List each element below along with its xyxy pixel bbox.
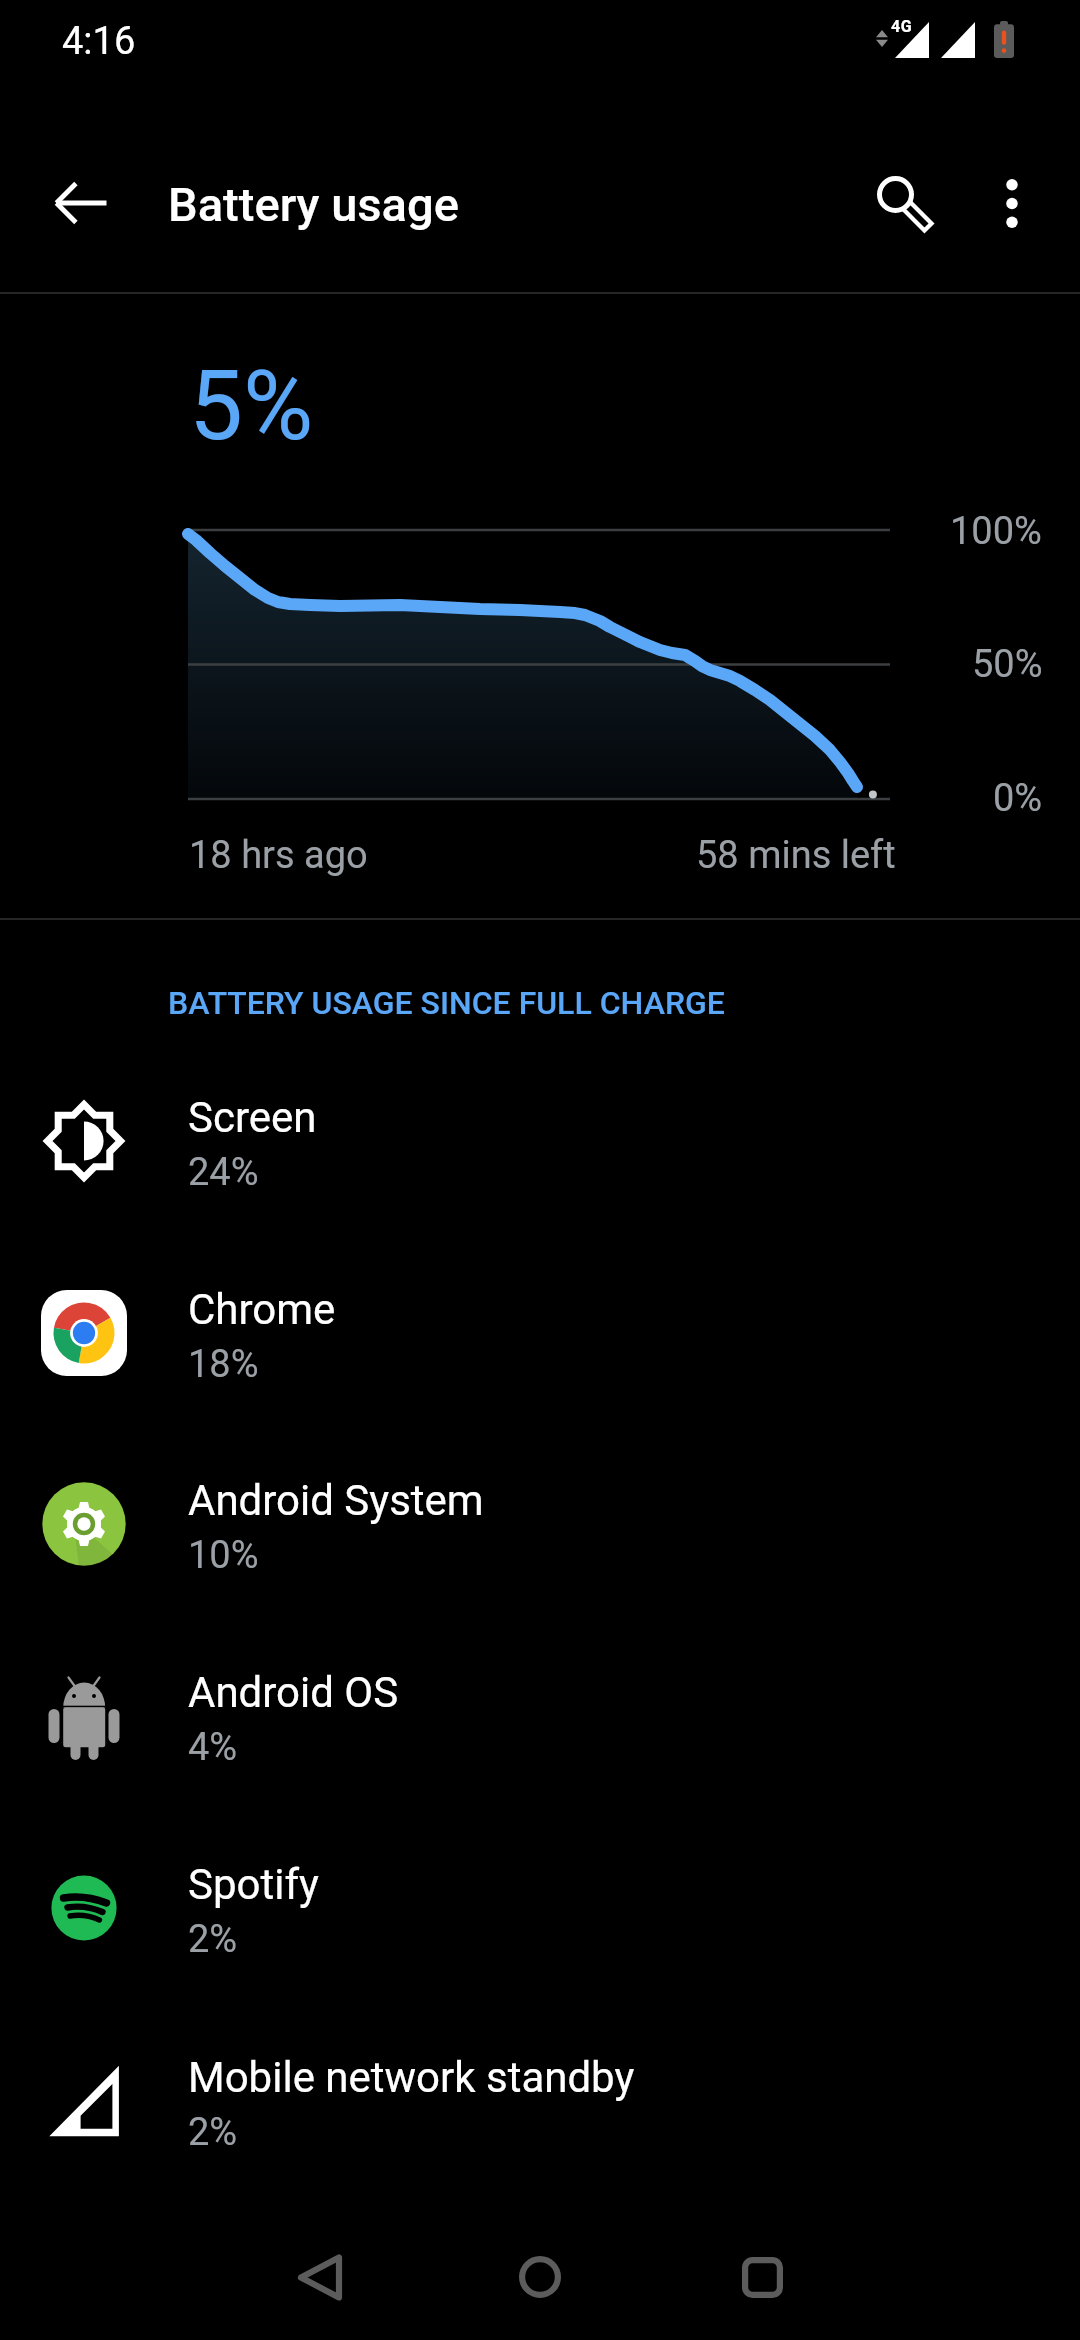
button[interactable]: More options [957, 148, 1067, 258]
staticText: 100% [950, 509, 1042, 554]
button[interactable]: Chrome [0, 1237, 1080, 1429]
staticText: Android System [188, 1476, 484, 1525]
staticText: 18 hrs ago [189, 833, 368, 878]
staticText: 18% [188, 1342, 259, 1387]
staticText: Chrome [188, 1285, 336, 1334]
staticText: Battery usage [168, 177, 459, 232]
button[interactable]: Mobile network standby [0, 2005, 1080, 2197]
button[interactable]: Screen [0, 1045, 1080, 1237]
button[interactable]: Recent apps [682, 2217, 842, 2337]
staticText: 4% [188, 1725, 238, 1770]
staticText: 58 mins left [696, 833, 896, 878]
staticText: 2% [188, 1917, 238, 1962]
staticText: BATTERY USAGE SINCE FULL CHARGE [168, 984, 725, 1022]
staticText: 4:16 [62, 19, 136, 64]
staticText: 5% [189, 350, 314, 463]
staticText: 50% [972, 642, 1043, 687]
staticText: 4G [891, 17, 913, 36]
button[interactable]: Navigate up [25, 148, 135, 258]
button[interactable]: Search [850, 151, 960, 261]
staticText: Android OS [188, 1668, 399, 1717]
staticText: Screen [188, 1093, 317, 1142]
button[interactable]: Android OS [0, 1620, 1080, 1812]
staticText: 24% [188, 1150, 259, 1195]
button[interactable]: Spotify [0, 1812, 1080, 2004]
button[interactable]: Android System [0, 1428, 1080, 1620]
staticText: Mobile network standby [188, 2053, 635, 2102]
staticText: 0% [993, 776, 1043, 821]
staticText: 2% [188, 2110, 238, 2155]
staticText: 10% [188, 1533, 259, 1578]
button[interactable]: Home [460, 2217, 620, 2337]
button[interactable]: Back [240, 2217, 400, 2337]
staticText: Spotify [188, 1860, 319, 1909]
